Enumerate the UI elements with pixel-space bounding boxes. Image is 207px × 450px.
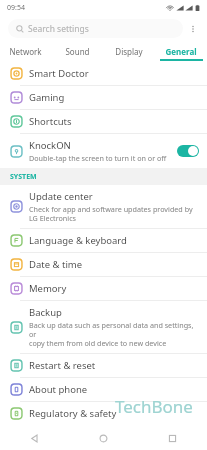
button[interactable]: Smart Doctor xyxy=(0,62,207,85)
staticText: About phone xyxy=(29,383,88,396)
staticText: Memory xyxy=(29,282,67,295)
button[interactable]: General xyxy=(155,42,207,61)
button[interactable]: KnockON xyxy=(0,134,207,168)
button[interactable]: Network xyxy=(0,42,51,61)
staticText: KnockON xyxy=(29,139,71,152)
staticText: TechBone xyxy=(115,395,193,418)
staticText: Backup xyxy=(29,306,62,319)
staticText: Regulatory & safety xyxy=(29,407,117,420)
staticText: Network xyxy=(9,46,42,57)
staticText: Smart Doctor xyxy=(29,67,89,80)
staticText: 09:54 xyxy=(7,3,25,13)
button[interactable]: Home xyxy=(69,426,138,450)
button[interactable]: Display xyxy=(103,42,155,61)
staticText: Check for app and software updates provi… xyxy=(29,204,193,223)
staticText: General xyxy=(165,46,197,57)
button[interactable]: KnockON toggle, on xyxy=(177,145,199,157)
staticText: Shortcuts xyxy=(29,115,72,128)
staticText: SYSTEM xyxy=(10,172,37,182)
button[interactable]: Back xyxy=(0,426,69,450)
staticText: Language & keyboard xyxy=(29,234,127,247)
staticText: Display xyxy=(115,46,143,57)
button[interactable]: About phone xyxy=(0,378,207,401)
button[interactable]: Search settings xyxy=(8,19,183,38)
button[interactable]: Shortcuts xyxy=(0,110,207,133)
staticText: Restart & reset xyxy=(29,359,96,372)
button[interactable]: More options xyxy=(183,19,203,39)
staticText: Search settings xyxy=(28,23,89,35)
staticText: Update center xyxy=(29,190,93,203)
staticText: Date & time xyxy=(29,258,83,271)
staticText: Gaming xyxy=(29,91,65,104)
button[interactable]: Gaming xyxy=(0,86,207,109)
button[interactable]: Restart & reset xyxy=(0,354,207,377)
button[interactable]: Date & time xyxy=(0,253,207,276)
button[interactable]: Update center xyxy=(0,185,207,228)
button[interactable]: Memory xyxy=(0,277,207,300)
button[interactable]: Language & keyboard xyxy=(0,229,207,252)
button[interactable]: Sound xyxy=(51,42,103,61)
staticText: Back up data such as personal data and s… xyxy=(29,320,199,348)
button[interactable]: Recents xyxy=(138,426,207,450)
staticText: Sound xyxy=(65,46,90,57)
button[interactable]: Regulatory & safety xyxy=(0,402,207,425)
button[interactable]: Backup xyxy=(0,301,207,353)
staticText: Double-tap the screen to turn it on or o… xyxy=(29,153,167,163)
